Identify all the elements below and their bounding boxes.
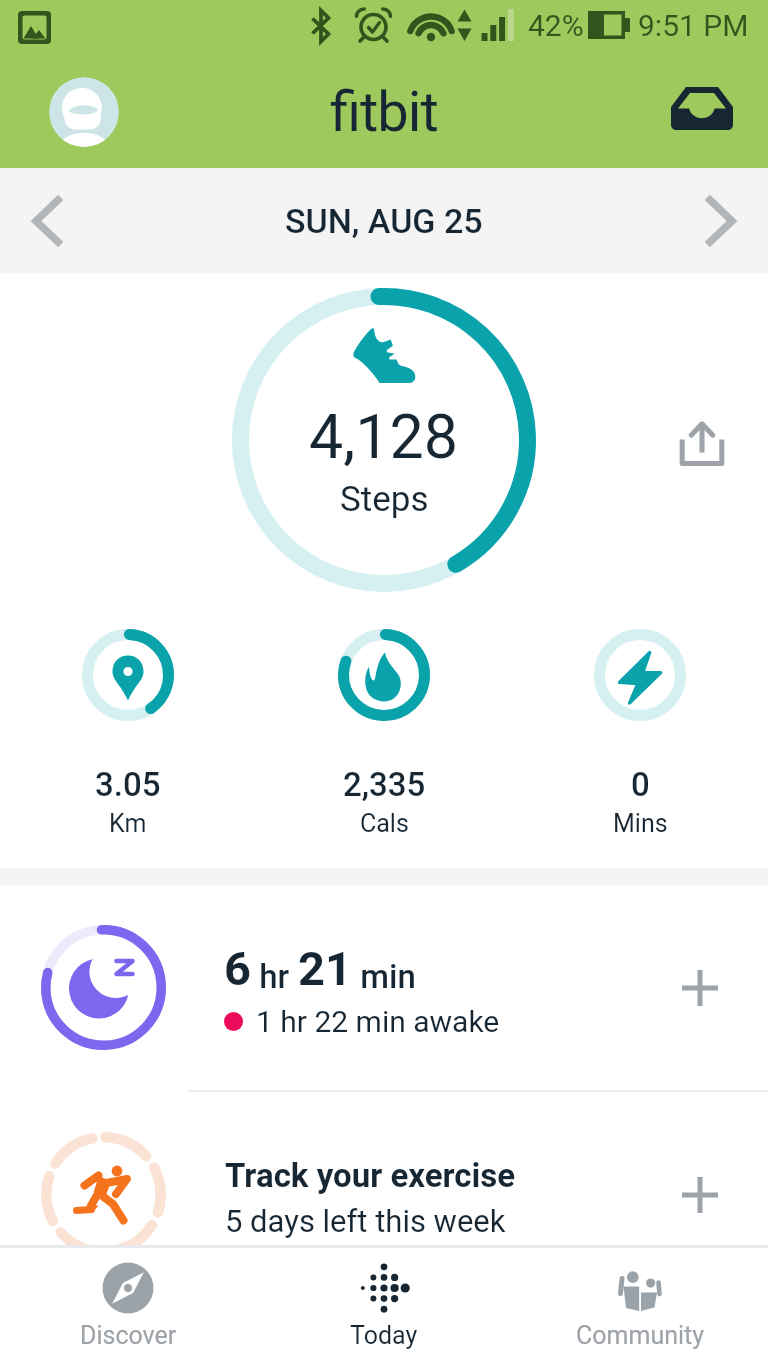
staticText: hr — [251, 957, 298, 996]
staticText: 6 — [224, 941, 251, 996]
staticText: 42% — [528, 8, 584, 43]
staticText: 5 days left this week — [225, 1203, 506, 1239]
button[interactable]: Log exercise — [670, 1165, 730, 1225]
button[interactable]: 0 — [512, 629, 768, 838]
staticText: Community — [576, 1321, 705, 1350]
staticText: 4,128 — [309, 401, 459, 472]
staticText: 9:51 PM — [638, 8, 749, 43]
button[interactable]: Profile — [49, 77, 119, 147]
button[interactable]: Today — [256, 1248, 512, 1350]
button[interactable]: Inbox — [670, 80, 734, 144]
staticText: Today — [350, 1321, 418, 1350]
button[interactable]: Share — [672, 413, 732, 473]
staticText: Cals — [360, 809, 409, 838]
staticText: SUN, AUG 25 — [285, 201, 483, 241]
button[interactable]: 2,335 — [256, 629, 512, 838]
button[interactable]: 6 — [0, 885, 768, 1090]
staticText: Track your exercise — [225, 1156, 516, 1195]
button[interactable]: Discover — [0, 1248, 256, 1350]
button[interactable]: Track your exercise — [0, 1092, 768, 1297]
staticText: 0 — [631, 765, 650, 804]
staticText: Mins — [613, 809, 668, 838]
staticText: 1 hr 22 min awake — [256, 1004, 500, 1039]
staticText: fitbit — [330, 79, 438, 145]
button[interactable]: Log sleep — [670, 958, 730, 1018]
button[interactable]: Previous day — [0, 177, 88, 265]
button[interactable]: Community — [512, 1248, 768, 1350]
staticText: 21 — [298, 941, 352, 996]
staticText: min — [352, 957, 416, 996]
button[interactable]: 3.05 — [0, 629, 256, 838]
staticText: 2,335 — [343, 765, 426, 804]
staticText: Discover — [80, 1321, 177, 1350]
staticText: Km — [109, 809, 147, 838]
button[interactable]: Next day — [680, 177, 768, 265]
staticText: 3.05 — [95, 765, 161, 804]
staticText: Steps — [340, 479, 429, 520]
